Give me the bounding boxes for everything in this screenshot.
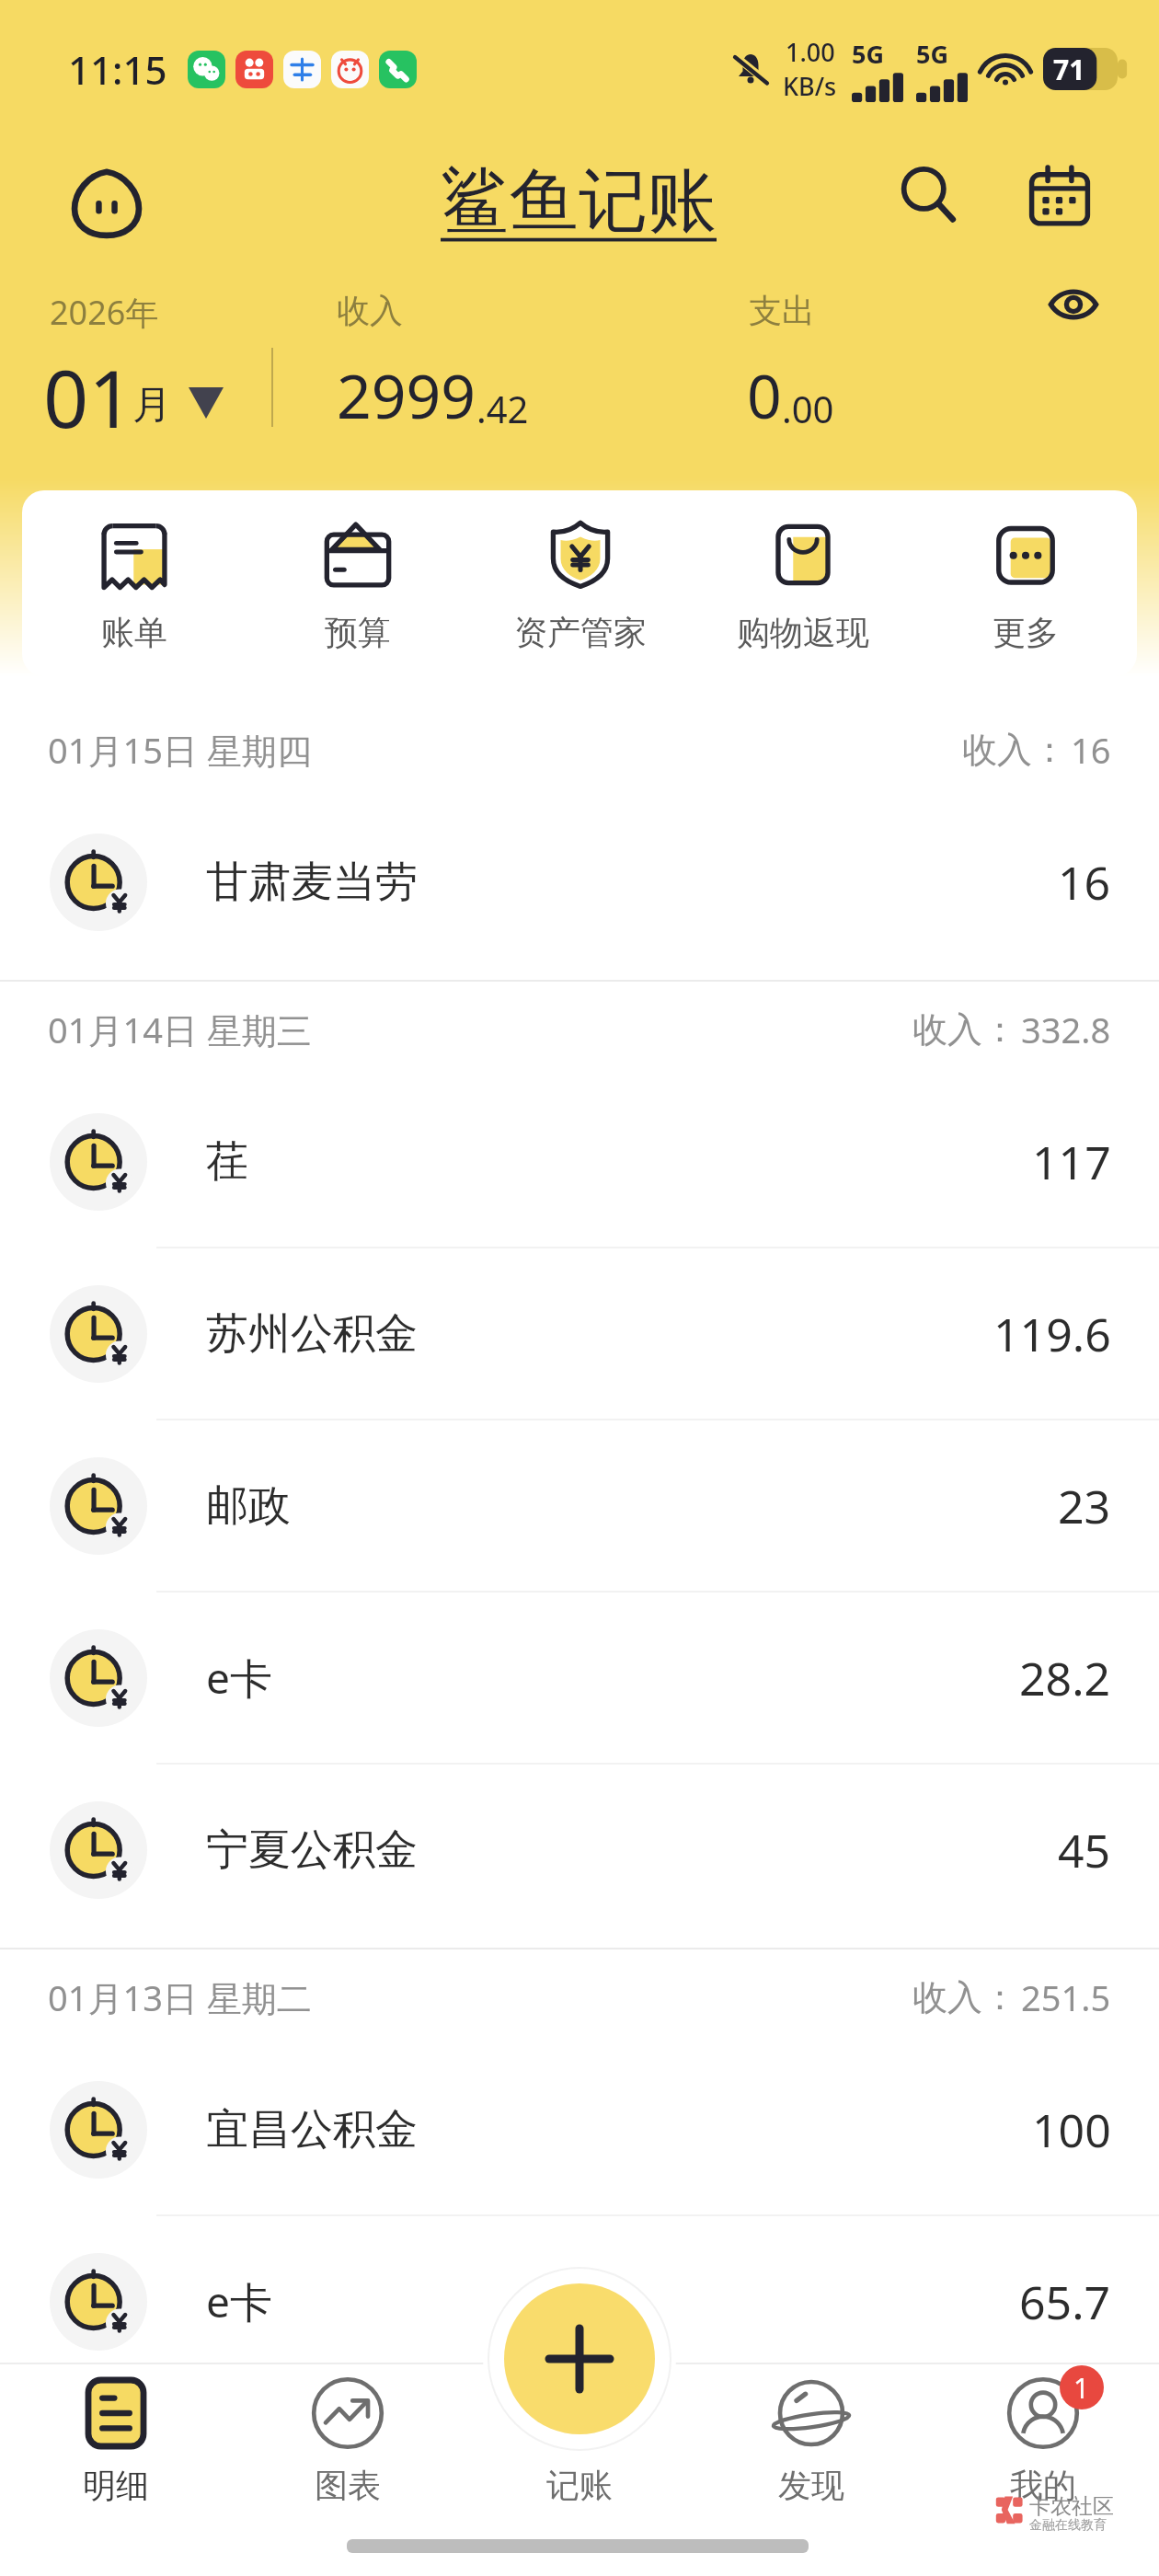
button[interactable]: 宁夏公积金 (0, 1765, 1159, 1935)
staticText: 65.7 (1019, 2271, 1111, 2333)
staticText: 明细 (83, 2465, 149, 2506)
staticText: .00 (782, 384, 834, 433)
button[interactable]: 荏 (0, 1076, 1159, 1247)
staticText: 2999 (337, 353, 476, 436)
button[interactable]: 更多 (914, 490, 1137, 676)
button[interactable]: 1 (927, 2363, 1159, 2576)
staticText: 卡农社区 (1029, 2493, 1114, 2520)
staticText: 收入 (337, 290, 403, 331)
staticText: 100 (1032, 2099, 1111, 2161)
staticText: 账单 (101, 612, 167, 653)
staticText: 01月13日 星期二 (48, 1973, 312, 2021)
staticText: 28.2 (1019, 1647, 1111, 1709)
staticText: 预算 (325, 612, 391, 653)
button[interactable]: 购物返现 (692, 490, 914, 676)
button[interactable]: 图表 (232, 2363, 464, 2576)
staticText: 购物返现 (737, 612, 869, 653)
staticText: 资产管家 (514, 612, 647, 653)
staticText: 23 (1058, 1475, 1111, 1537)
staticText: KB/s (783, 69, 837, 103)
button[interactable]: 发现 (695, 2363, 927, 2576)
staticText: 01 (43, 343, 134, 451)
staticText: 119.6 (993, 1303, 1111, 1365)
staticText: 鲨鱼记账 (441, 158, 717, 245)
staticText: 0 (747, 353, 782, 436)
button[interactable]: Search (890, 158, 968, 236)
staticText: 月 (132, 381, 171, 430)
staticText: 图表 (315, 2465, 381, 2506)
staticText: 5G (852, 37, 884, 71)
staticText: 记账 (546, 2465, 613, 2506)
staticText: 16 (1071, 726, 1111, 774)
staticText: 收入： (912, 1975, 1017, 2019)
staticText: 01月15日 星期四 (48, 726, 312, 774)
staticText: 支出 (749, 290, 815, 331)
staticText: 16 (1058, 851, 1111, 914)
button[interactable]: Toggle amount visibility (1036, 267, 1111, 342)
button[interactable]: 账单 (22, 490, 246, 676)
staticText: 甘肃麦当劳 (206, 856, 418, 909)
staticText: 1.00 (786, 35, 835, 69)
staticText: 45 (1058, 1819, 1111, 1881)
staticText: 宁夏公积金 (206, 1823, 418, 1877)
staticText: 发现 (778, 2465, 844, 2506)
staticText: 2026年 (50, 290, 159, 335)
staticText: 71 (1053, 51, 1085, 88)
button[interactable]: 资产管家 (469, 490, 692, 676)
staticText: 荏 (206, 1135, 248, 1189)
staticText: 5G (916, 37, 948, 71)
button[interactable]: 邮政 (0, 1420, 1159, 1591)
button[interactable]: e卡 (0, 2216, 1159, 2386)
button[interactable]: 预算 (246, 490, 469, 676)
staticText: 邮政 (206, 1479, 291, 1533)
staticText: 收入： (962, 728, 1067, 772)
staticText: 金融在线教育 (1029, 2517, 1107, 2534)
staticText: 苏州公积金 (206, 1307, 418, 1361)
button[interactable]: 甘肃麦当劳 (0, 797, 1159, 967)
staticText: 251.5 (1021, 1973, 1111, 2021)
staticText: 收入： (912, 1007, 1017, 1052)
button[interactable]: 宜昌公积金 (0, 2044, 1159, 2214)
button[interactable]: Profile (72, 168, 142, 238)
button[interactable]: Add record (504, 2283, 655, 2434)
staticText: 01月14日 星期三 (48, 1006, 312, 1053)
button[interactable]: Calendar (1021, 158, 1098, 236)
button[interactable]: 苏州公积金 (0, 1248, 1159, 1419)
button[interactable]: 明细 (0, 2363, 232, 2576)
staticText: 更多 (993, 612, 1059, 653)
staticText: 332.8 (1021, 1006, 1111, 1053)
button[interactable]: e卡 (0, 1593, 1159, 1763)
button[interactable]: 记账 (464, 2363, 695, 2576)
staticText: 11:15 (68, 43, 167, 96)
staticText: 我的 (1010, 2465, 1076, 2506)
staticText: .42 (476, 384, 529, 433)
staticText: 117 (1032, 1131, 1111, 1193)
staticText: e卡 (206, 1649, 272, 1707)
staticText: 1 (1073, 2369, 1090, 2407)
staticText: 宜昌公积金 (206, 2103, 418, 2156)
staticText: e卡 (206, 2272, 272, 2330)
